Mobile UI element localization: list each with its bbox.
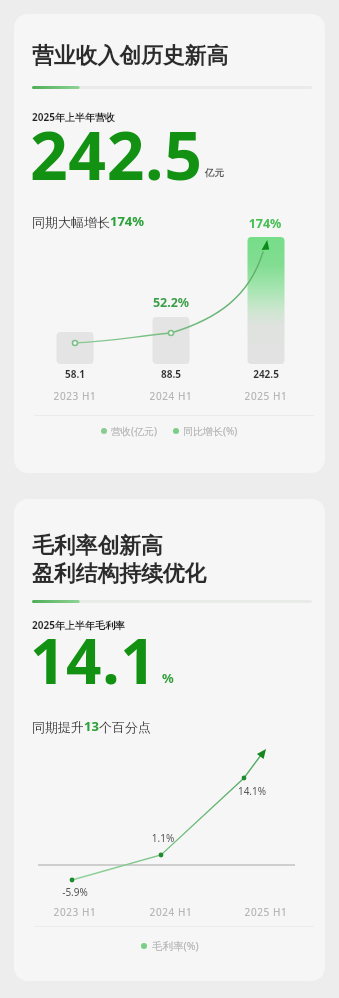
button[interactable]: 营业收入创历史新高 bbox=[14, 14, 325, 473]
staticText: 营业收入创历史新高 bbox=[32, 42, 229, 69]
staticText: 174% bbox=[220, 215, 310, 232]
staticText: 58.1 bbox=[30, 367, 120, 381]
staticText: 2025 H1 bbox=[221, 389, 311, 403]
staticText: 14.1 bbox=[30, 618, 157, 702]
staticText: -5.9% bbox=[30, 885, 120, 899]
staticText: 2023 H1 bbox=[30, 389, 120, 403]
staticText: 同比增长(%) bbox=[183, 424, 238, 438]
staticText: 13 bbox=[84, 717, 99, 735]
staticText: 174% bbox=[110, 212, 145, 230]
staticText: 88.5 bbox=[126, 367, 216, 381]
staticText: 242.5 bbox=[30, 109, 203, 199]
staticText: 同期提升 bbox=[32, 719, 84, 735]
staticText: 2025年上半年营收 bbox=[32, 110, 115, 124]
staticText: 个百分点 bbox=[99, 719, 151, 735]
staticText: % bbox=[162, 669, 174, 687]
staticText: 毛利率创新高 盈利结构持续优化 bbox=[32, 532, 207, 587]
button[interactable]: 毛利率创新高 盈利结构持续优化 bbox=[14, 499, 325, 981]
staticText: 2024 H1 bbox=[126, 389, 216, 403]
staticText: 2025 H1 bbox=[221, 905, 311, 919]
staticText: 1.1% bbox=[118, 831, 208, 845]
staticText: 2023 H1 bbox=[30, 905, 120, 919]
staticText: 营收(亿元) bbox=[111, 424, 157, 438]
staticText: 2024 H1 bbox=[126, 905, 216, 919]
staticText: 52.2% bbox=[126, 294, 216, 311]
staticText: 14.1% bbox=[207, 784, 297, 798]
staticText: 2025年上半年毛利率 bbox=[32, 618, 125, 632]
staticText: 同期大幅增长 bbox=[32, 214, 110, 230]
staticText: 毛利率(%) bbox=[152, 939, 199, 953]
staticText: 242.5 bbox=[221, 367, 311, 381]
staticText: 亿元 bbox=[205, 167, 224, 179]
